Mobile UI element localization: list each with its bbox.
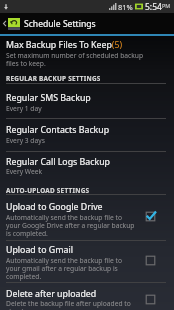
staticText: Automatically send the backup file to yo… bbox=[6, 256, 137, 281]
button[interactable]: Regular Call Logs Backup bbox=[0, 151, 174, 180]
staticText: Every Week bbox=[6, 167, 42, 176]
button[interactable]: Upload to Gmail bbox=[0, 240, 174, 282]
staticText: Regular Call Logs Backup bbox=[6, 156, 110, 168]
button[interactable]: Regular SMS Backup bbox=[0, 84, 174, 118]
staticText: AUTO-UPLOAD SETTINGS bbox=[6, 186, 90, 195]
button[interactable]: Unchecked bbox=[143, 253, 158, 268]
staticText: PM bbox=[162, 2, 171, 9]
button[interactable]: Regular Contacts Backup bbox=[0, 118, 174, 151]
staticText: 81% bbox=[118, 2, 133, 12]
staticText: Automatically send the backup file to yo… bbox=[6, 213, 137, 238]
staticText: REGULAR BACKUP SETTINGS bbox=[6, 74, 101, 83]
staticText: 5:54 bbox=[145, 1, 162, 13]
staticText: Set maximum number of scheduled backup f… bbox=[6, 51, 144, 68]
button[interactable]: Max Backup Files To Keep(5) bbox=[0, 35, 174, 70]
button[interactable]: Unchecked bbox=[143, 292, 158, 307]
button[interactable]: Delete after uploaded bbox=[0, 282, 174, 310]
staticText: Schedule Settings bbox=[24, 18, 96, 30]
button[interactable]: Back bbox=[0, 13, 174, 34]
button[interactable]: Checked bbox=[143, 209, 158, 224]
other: Back bbox=[2, 19, 7, 28]
button[interactable]: Upload to Google Drive bbox=[0, 195, 174, 240]
staticText: Every 3 days bbox=[6, 136, 45, 145]
staticText: Upload to Google Drive bbox=[6, 201, 103, 213]
staticText: Regular SMS Backup bbox=[6, 92, 91, 104]
staticText: Delete after uploaded bbox=[6, 288, 97, 300]
staticText: Upload to Gmail bbox=[6, 244, 73, 256]
staticText: Every 1 day bbox=[6, 104, 42, 113]
staticText: Max Backup Files To Keep(5) bbox=[6, 39, 123, 51]
staticText: Regular Contacts Backup bbox=[6, 124, 110, 136]
staticText: Delete the backup file after uploaded to… bbox=[6, 299, 137, 310]
